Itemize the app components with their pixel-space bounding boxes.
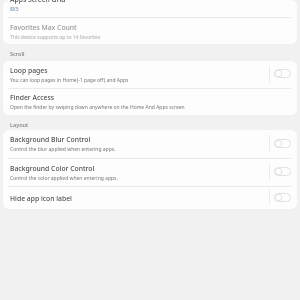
button[interactable]: Toggle switch xyxy=(274,167,291,176)
button[interactable]: Toggle switch xyxy=(274,139,291,148)
button[interactable]: Favorites Max Count xyxy=(3,18,297,44)
staticText: Control the blur applied when entering a… xyxy=(10,146,116,153)
staticText: You can loop pages in Home(-1 page off) … xyxy=(10,77,129,84)
staticText: Scroll xyxy=(10,50,25,58)
button[interactable]: Background Blur Control xyxy=(3,130,297,158)
button[interactable]: Toggle switch xyxy=(274,193,291,202)
button[interactable]: Background Color Control xyxy=(3,159,297,186)
staticText: This device supports up to 14 favorites xyxy=(10,34,101,41)
button[interactable]: Apps Screen Grid xyxy=(3,0,297,17)
staticText: Background Blur Control xyxy=(10,135,91,144)
staticText: Apps Screen Grid xyxy=(10,0,66,4)
staticText: 8X5 xyxy=(10,6,19,13)
staticText: Control the color applied when entering … xyxy=(10,175,118,182)
staticText: Favorites Max Count xyxy=(10,23,77,32)
staticText: Finder Access xyxy=(10,93,55,102)
button[interactable]: Loop pages xyxy=(3,61,297,88)
staticText: Loop pages xyxy=(10,66,48,75)
staticText: Background Color Control xyxy=(10,164,95,173)
button[interactable]: Toggle switch xyxy=(274,69,291,78)
button[interactable]: Hide app icon label xyxy=(3,187,297,209)
staticText: Open the finder by swiping down anywhere… xyxy=(10,104,185,111)
button[interactable]: Finder Access xyxy=(3,89,297,115)
staticText: Hide app icon label xyxy=(10,194,72,203)
staticText: Layout xyxy=(10,121,29,129)
